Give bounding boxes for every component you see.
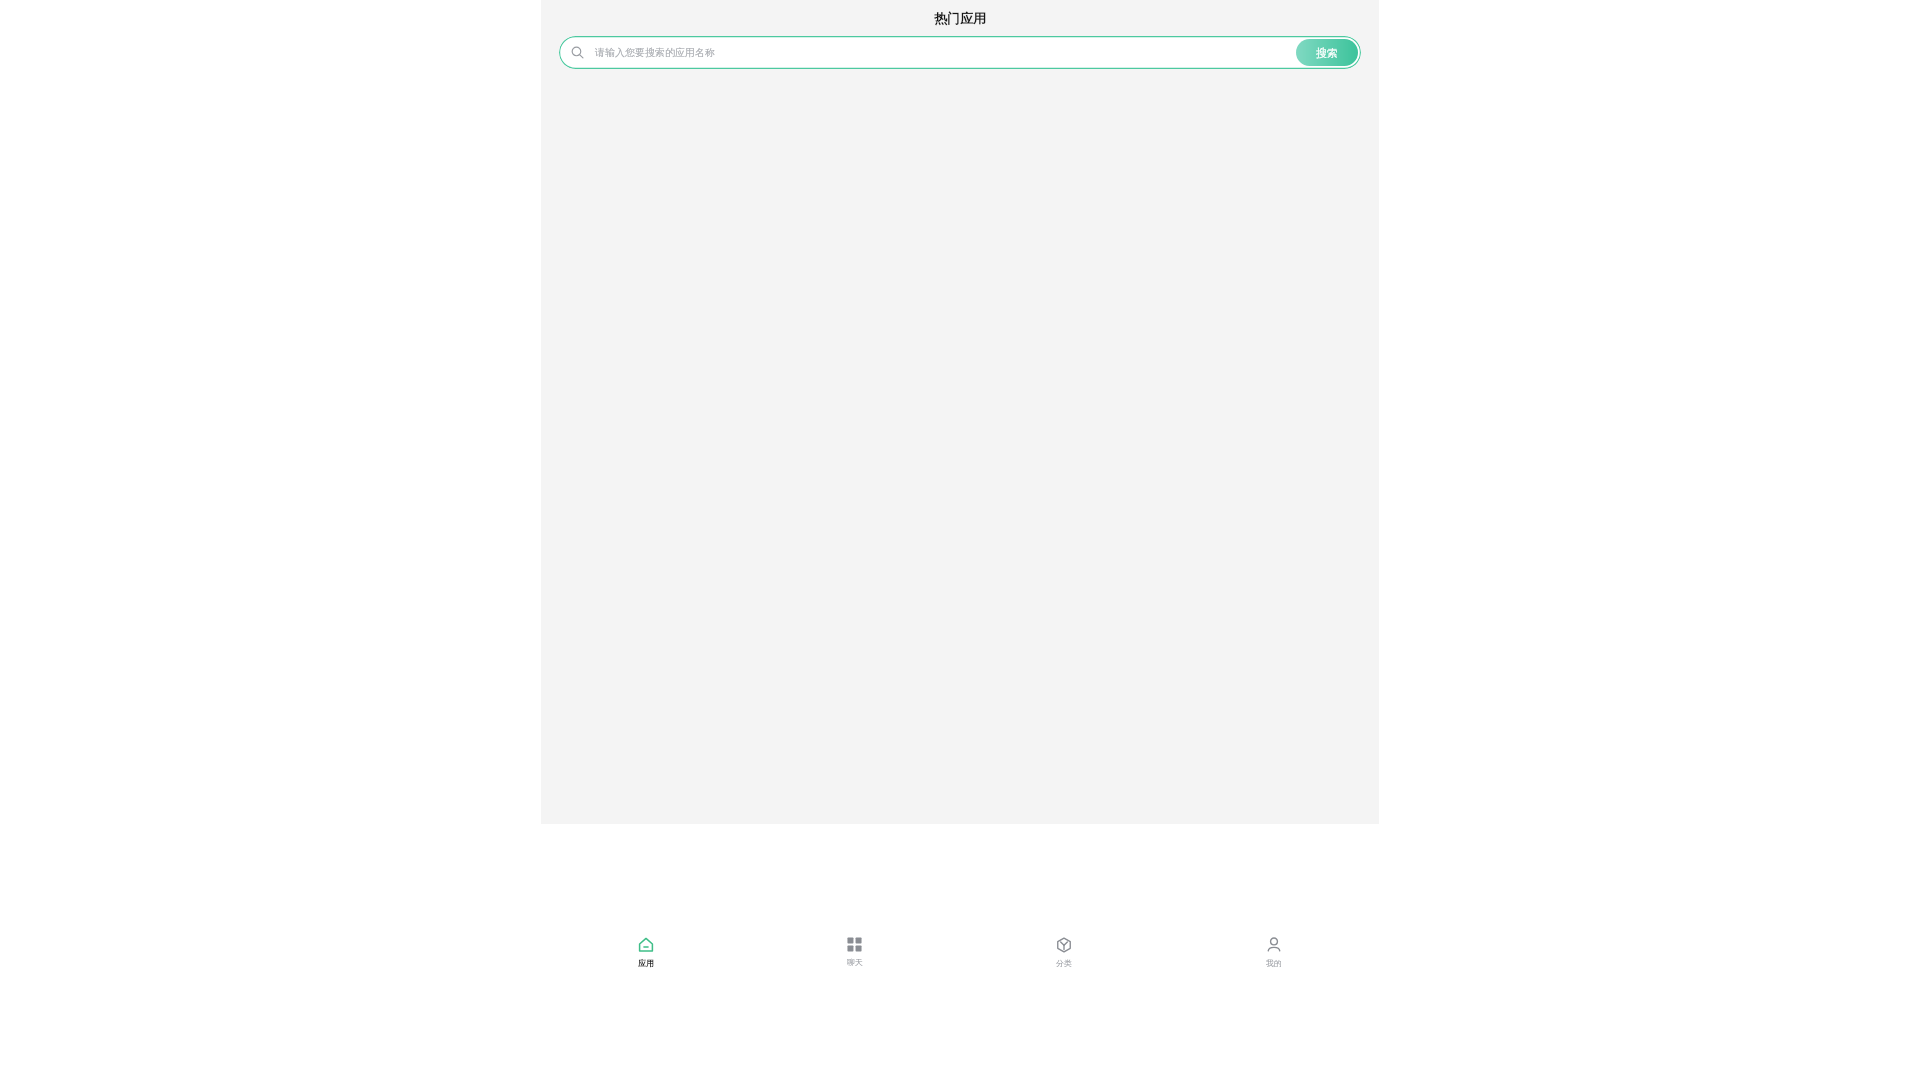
staticText: 分类 [1056,958,1072,968]
staticText: 热门应用 [934,10,986,26]
staticText: 搜索 [1316,46,1338,60]
staticText: 请输入您要搜索的应用名称 [595,46,1296,59]
button[interactable]: 请输入您要搜索的应用名称 [559,36,1361,69]
staticText: 我的 [1266,958,1282,968]
button[interactable]: 应用 [541,824,750,1080]
button[interactable]: 聊天 [750,824,959,1080]
button[interactable]: 搜索 [1296,39,1358,66]
button[interactable]: 我的 [1169,824,1379,1080]
button[interactable]: 分类 [959,824,1169,1080]
staticText: 应用 [638,958,654,968]
staticText: 聊天 [847,957,863,967]
